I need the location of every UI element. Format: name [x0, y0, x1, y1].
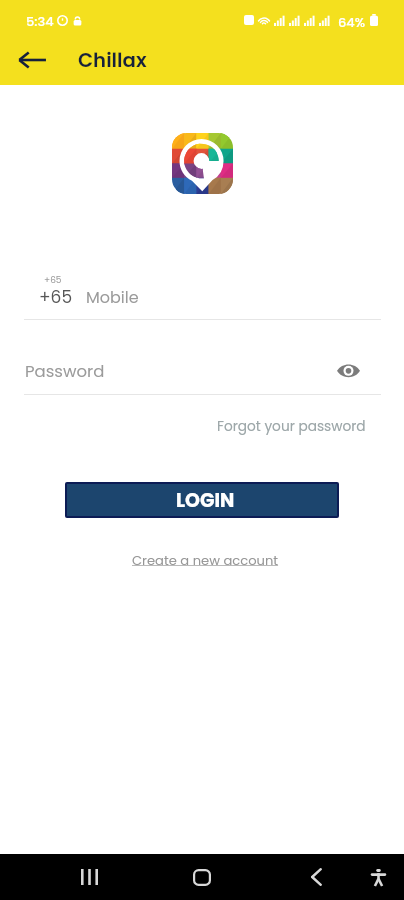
button[interactable]: Back	[14, 41, 51, 78]
button[interactable]: Home	[180, 855, 224, 899]
staticText: Create a new account	[132, 551, 279, 569]
button[interactable]: Show password	[334, 356, 363, 385]
button[interactable]: Forgot your password	[211, 411, 372, 442]
button[interactable]: LOGIN	[67, 484, 337, 516]
staticText: Chillax	[78, 46, 147, 74]
staticText: LOGIN	[176, 487, 235, 514]
staticText: Password	[25, 360, 105, 383]
staticText: 5:34	[26, 12, 54, 30]
staticText: +65	[44, 274, 62, 287]
staticText: Forgot your password	[217, 417, 366, 436]
staticText: +65	[39, 285, 73, 309]
staticText: Mobile	[86, 286, 139, 308]
button[interactable]: Accessibility	[356, 855, 400, 899]
button[interactable]: Recent apps	[67, 855, 111, 899]
button[interactable]: Back	[294, 855, 338, 899]
staticText: 64%	[338, 13, 366, 31]
button[interactable]: Create a new account	[126, 545, 285, 575]
